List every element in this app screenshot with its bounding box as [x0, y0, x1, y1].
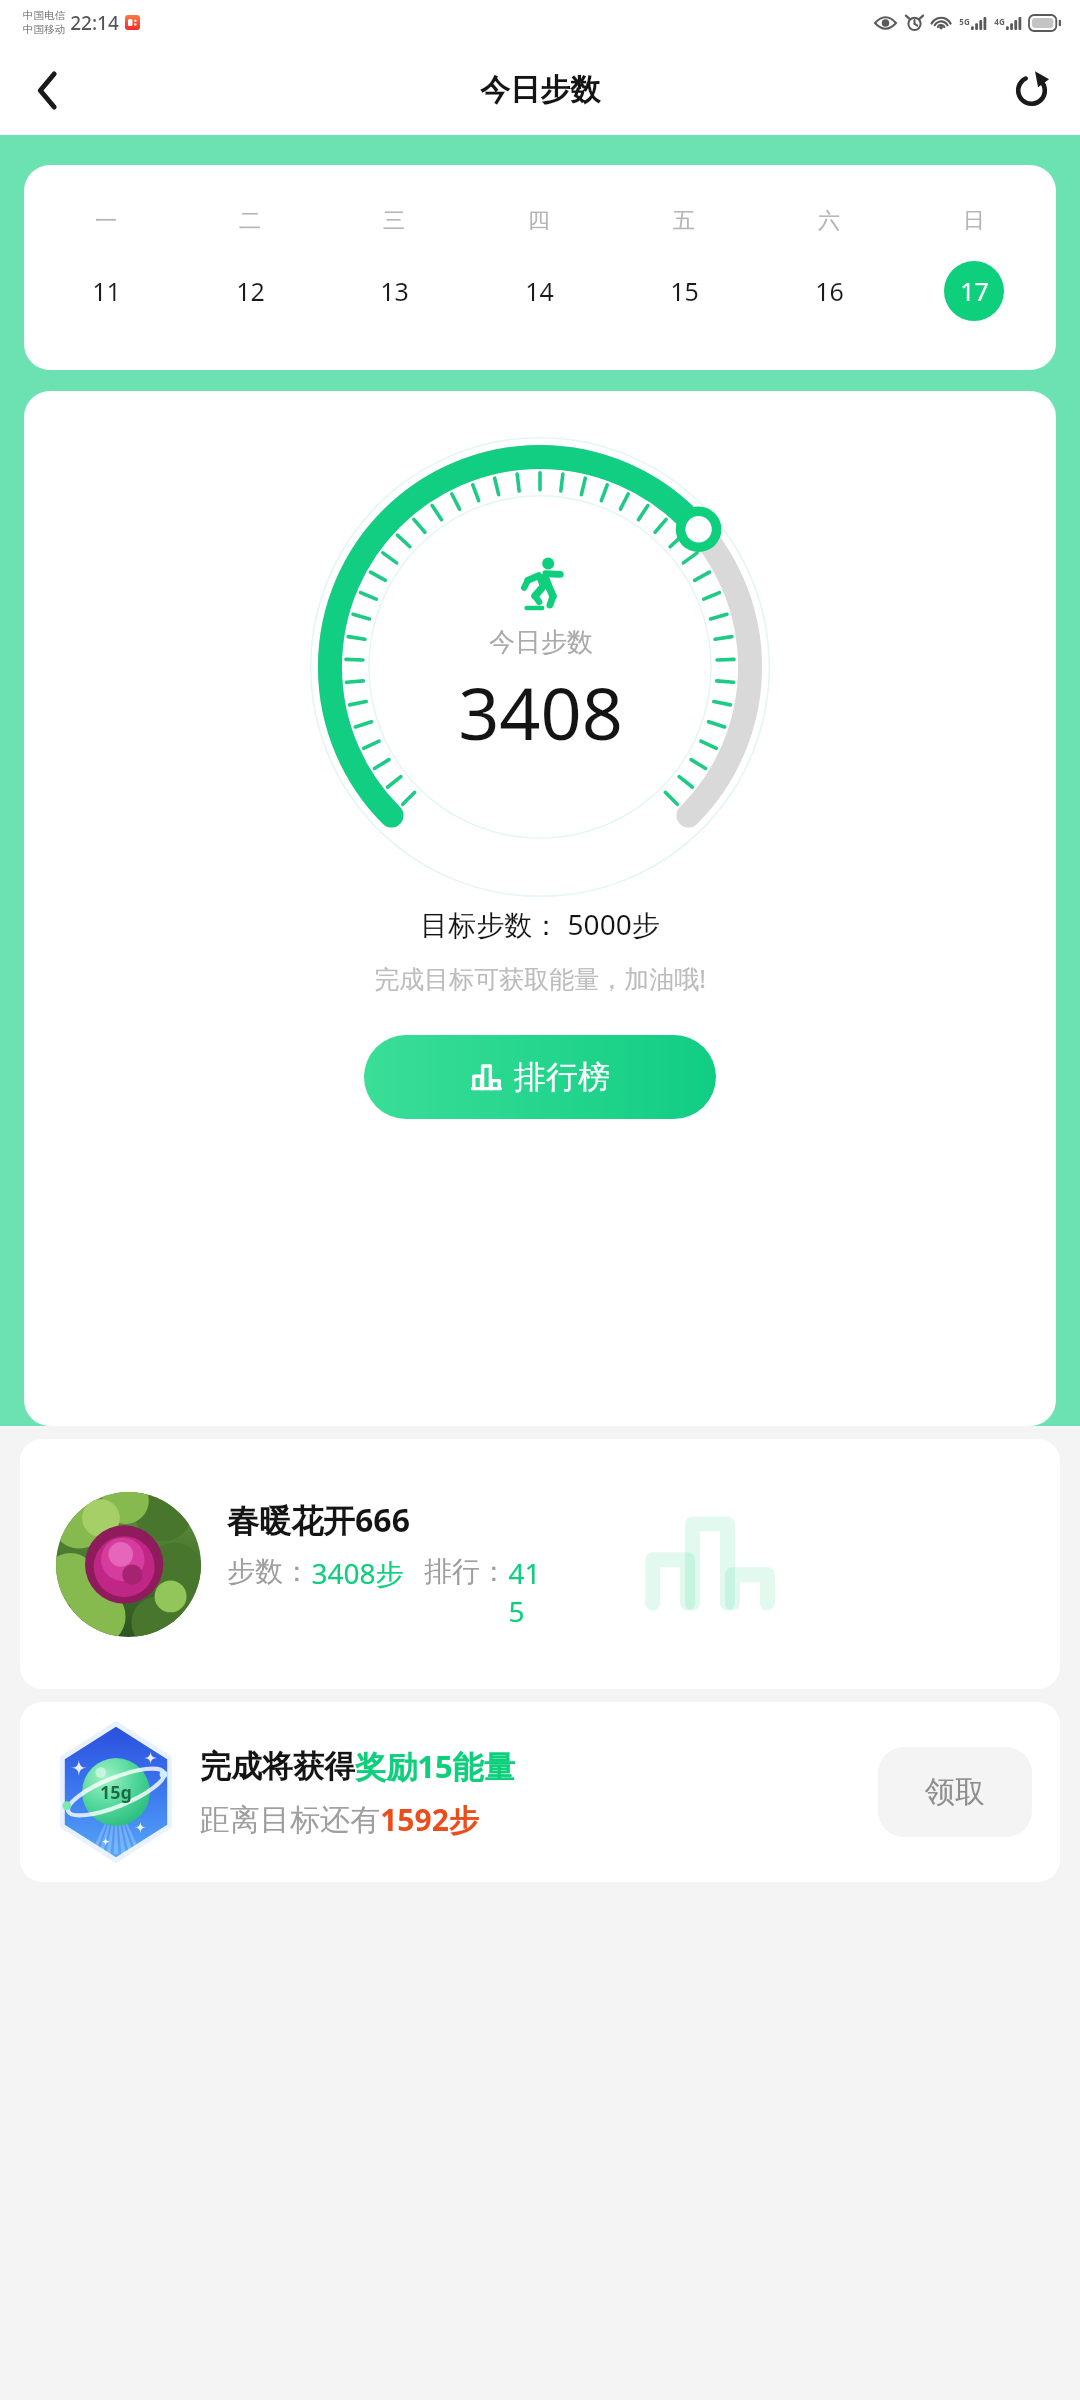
staticText: 步数： [227, 1554, 311, 1589]
staticText: 五 [673, 207, 695, 235]
staticText: 排行榜 [514, 1057, 610, 1097]
staticText: 17 [960, 274, 989, 308]
staticText: 今日步数 [480, 71, 600, 109]
staticText: 完成目标可获取能量，加油哦! [374, 961, 706, 995]
button[interactable]: 二 [178, 165, 322, 370]
button[interactable]: 三 [322, 165, 466, 370]
staticText: 41 [508, 1554, 541, 1592]
button[interactable]: 排行榜 [364, 1035, 716, 1119]
button[interactable]: Refresh [1002, 61, 1060, 119]
staticText: 1592步 [380, 1799, 479, 1840]
button[interactable]: 领取 [878, 1747, 1032, 1837]
staticText: 5 [508, 1592, 525, 1630]
staticText: 六 [818, 207, 840, 235]
staticText: 中国电信 [23, 9, 65, 22]
button[interactable]: Back [18, 61, 76, 119]
staticText: 领取 [925, 1773, 985, 1811]
staticText: 16 [815, 274, 844, 308]
staticText: 一 [95, 207, 117, 235]
staticText: 13 [380, 274, 409, 308]
button[interactable]: 春暖花开666 [20, 1439, 1060, 1689]
staticText: 奖励15能量 [355, 1745, 515, 1787]
button[interactable]: 四 [466, 165, 611, 370]
button[interactable]: 日 [901, 165, 1046, 370]
button[interactable]: 五 [611, 165, 756, 370]
staticText: 11 [92, 274, 121, 308]
staticText: 目标步数： 5000步 [420, 905, 660, 943]
staticText: 5G [959, 16, 970, 27]
staticText: 日 [963, 207, 985, 235]
staticText: 春暖花开666 [227, 1498, 410, 1542]
staticText: 15 [670, 274, 699, 308]
staticText: 完成将获得 [200, 1747, 355, 1786]
staticText: 今日步数 [489, 626, 593, 659]
button[interactable]: 六 [756, 165, 901, 370]
staticText: 3408步 [311, 1554, 404, 1592]
staticText: 四 [528, 207, 550, 235]
staticText: 距离目标还有 [200, 1801, 380, 1839]
staticText: 二 [239, 207, 261, 235]
staticText: 12 [236, 274, 265, 308]
staticText: 15g [100, 1780, 132, 1805]
staticText: 4G [994, 16, 1005, 27]
staticText: 14 [525, 274, 554, 308]
staticText: 三 [383, 207, 405, 235]
staticText: 排行： [424, 1554, 508, 1589]
button[interactable]: 一 [34, 165, 178, 370]
staticText: 中国移动 [23, 23, 65, 36]
staticText: 3408 [458, 663, 623, 761]
staticText: 22:14 [70, 10, 119, 36]
